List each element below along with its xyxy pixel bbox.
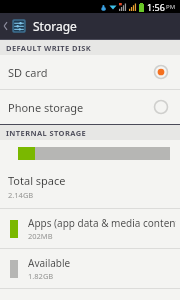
staticText: PM xyxy=(166,3,176,11)
staticText: Available xyxy=(28,256,71,270)
staticText: INTERNAL STORAGE xyxy=(6,128,87,138)
staticText: Apps (app data & media content) xyxy=(28,216,176,230)
staticText: DEFAULT WRITE DISK xyxy=(6,43,92,53)
staticText: 1.82GB xyxy=(28,271,54,281)
staticText: SD card xyxy=(8,65,154,80)
button[interactable]: Navigate up, Storage xyxy=(0,13,180,39)
staticText: Total space xyxy=(8,173,66,188)
staticText: 1:56 xyxy=(147,1,165,13)
staticText: 202MB xyxy=(28,231,53,241)
button[interactable]: Total space xyxy=(0,166,180,208)
staticText: Storage xyxy=(33,18,77,34)
button[interactable]: Available xyxy=(0,249,180,288)
button[interactable]: Apps (app data & media content) xyxy=(0,209,180,248)
button[interactable]: Phone storage xyxy=(0,90,180,124)
button[interactable]: SD card xyxy=(0,55,180,89)
staticText: 2.14GB xyxy=(8,190,34,200)
staticText: Phone storage xyxy=(8,100,154,115)
